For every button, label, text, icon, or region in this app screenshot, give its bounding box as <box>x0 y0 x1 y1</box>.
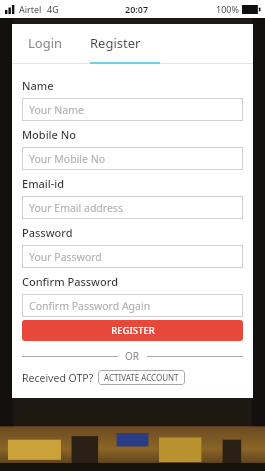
button[interactable]: Your Password <box>22 245 243 268</box>
staticText: Your Email address <box>29 201 123 215</box>
staticText: Received OTP? <box>22 371 94 385</box>
staticText: Confirm Password Again <box>29 299 151 313</box>
staticText: ACTIVATE ACCOUNT <box>104 372 179 383</box>
staticText: Mobile No <box>22 127 77 142</box>
staticText: 4G <box>47 3 59 15</box>
button[interactable]: ACTIVATE ACCOUNT <box>98 370 185 385</box>
button[interactable]: Your Email address <box>22 196 243 219</box>
button[interactable]: Login <box>28 24 90 62</box>
button[interactable]: Your Name <box>22 98 243 121</box>
button[interactable]: Register <box>90 24 170 62</box>
button[interactable]: REGISTER <box>22 320 243 341</box>
staticText: Login <box>28 34 63 52</box>
staticText: Airtel <box>19 3 42 15</box>
staticText: Name <box>22 78 54 93</box>
staticText: OR <box>125 349 140 363</box>
staticText: Confirm Password <box>22 274 118 289</box>
staticText: Your Password <box>29 250 102 264</box>
button[interactable]: Confirm Password Again <box>22 294 243 317</box>
staticText: 20:07 <box>125 3 149 15</box>
staticText: Password <box>22 225 73 240</box>
button[interactable]: Your Mobile No <box>22 147 243 170</box>
staticText: 100% <box>216 3 239 15</box>
staticText: Email-id <box>22 176 65 191</box>
staticText: Register <box>90 34 141 52</box>
staticText: REGISTER <box>111 324 155 337</box>
staticText: Your Name <box>29 103 84 117</box>
staticText: Your Mobile No <box>29 152 106 166</box>
